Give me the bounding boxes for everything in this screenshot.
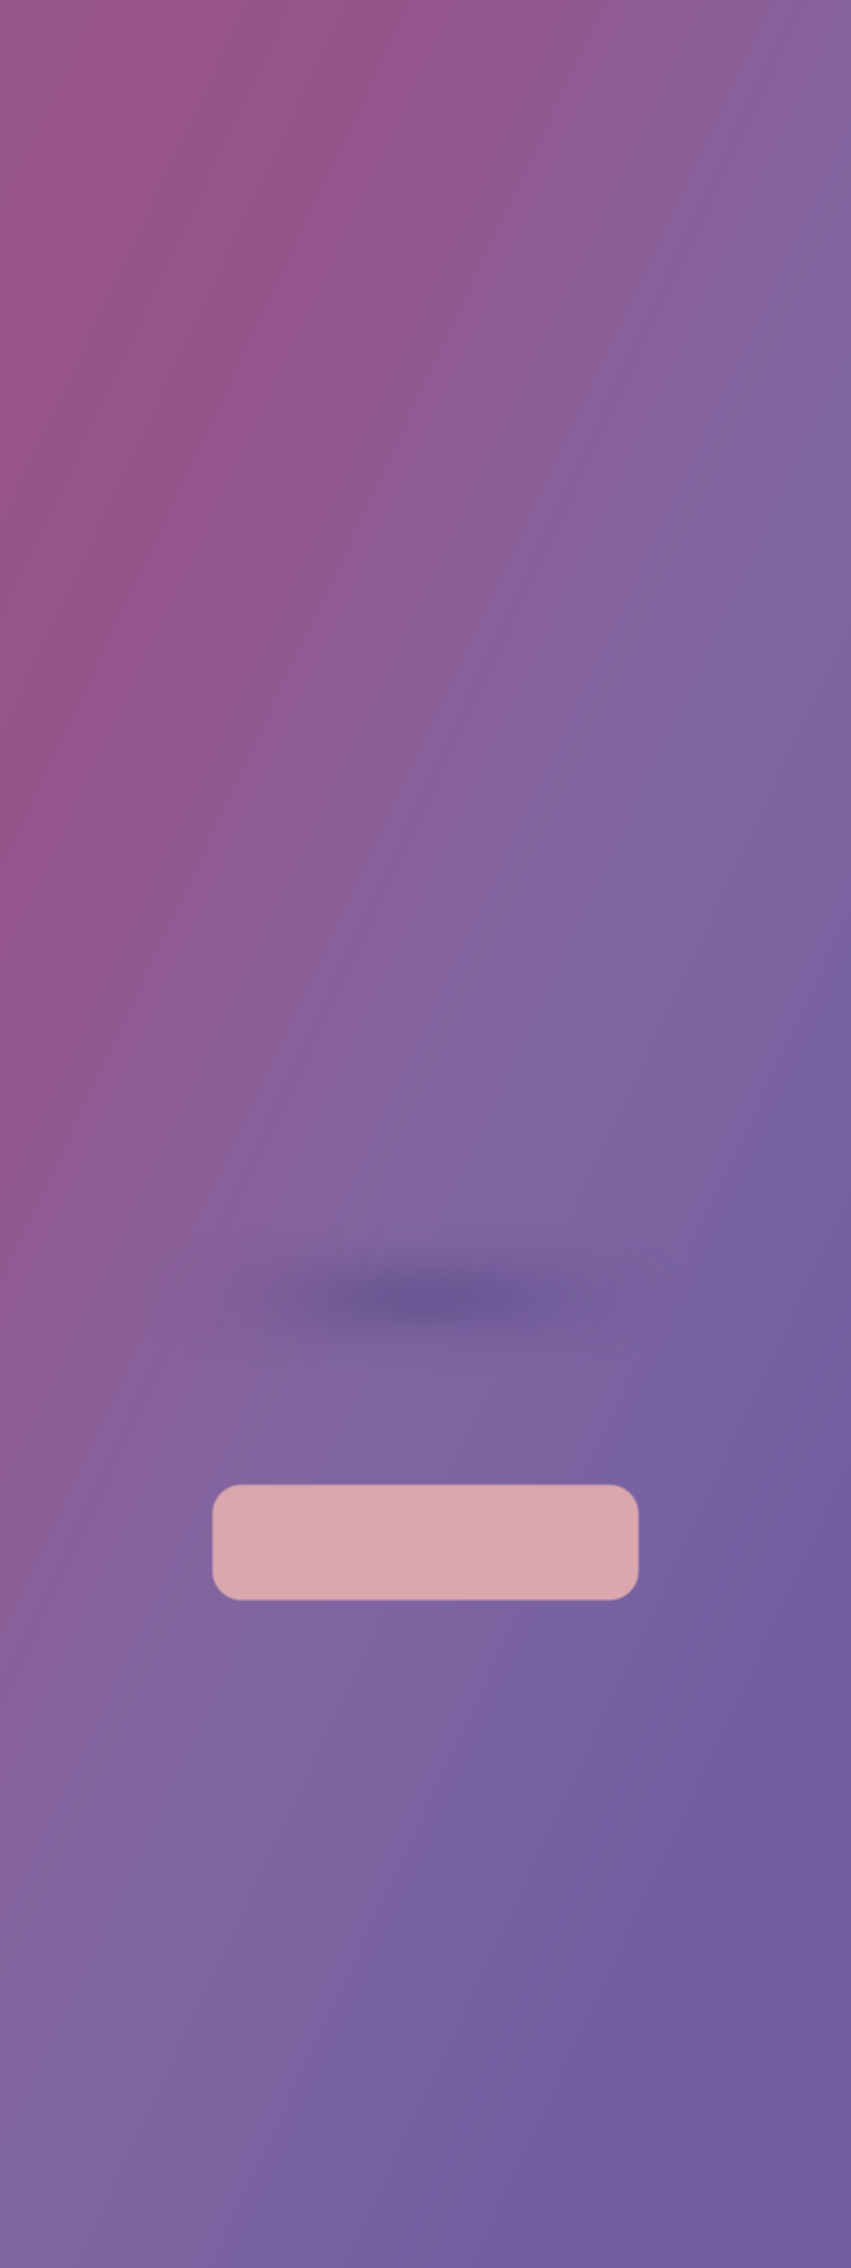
button[interactable]: Get Started <box>209 1482 641 1603</box>
